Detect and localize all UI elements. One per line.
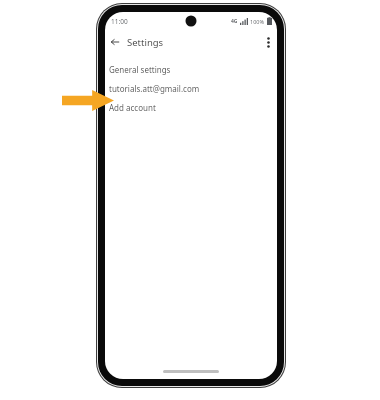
button[interactable]: More options [259, 33, 277, 51]
staticText: 100% [250, 18, 265, 25]
staticText: Add account [109, 102, 156, 113]
button[interactable]: Back [105, 32, 125, 52]
staticText: General settings [109, 64, 171, 75]
button[interactable]: General settings [105, 60, 277, 79]
staticText: 11:00 [111, 17, 128, 26]
staticText: tutorials.att@gmail.com [109, 83, 200, 94]
staticText: Settings [127, 36, 164, 49]
button[interactable]: Add account [105, 98, 277, 117]
staticText: 4G [231, 18, 238, 25]
button[interactable]: tutorials.att@gmail.com [105, 79, 277, 98]
